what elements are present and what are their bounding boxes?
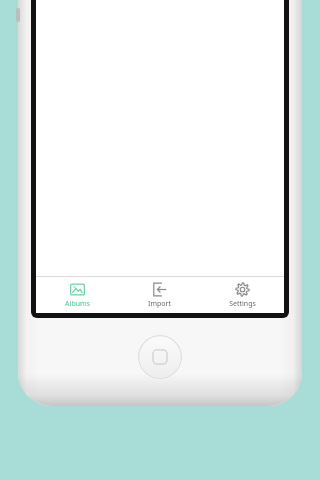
button[interactable]: Import	[118, 277, 201, 309]
staticText: Settings	[229, 299, 256, 309]
button[interactable]: Albums	[36, 277, 118, 309]
button[interactable]: Home	[138, 335, 182, 379]
button[interactable]: Settings	[201, 277, 284, 309]
staticText: Albums	[65, 299, 90, 309]
staticText: Import	[148, 299, 171, 309]
